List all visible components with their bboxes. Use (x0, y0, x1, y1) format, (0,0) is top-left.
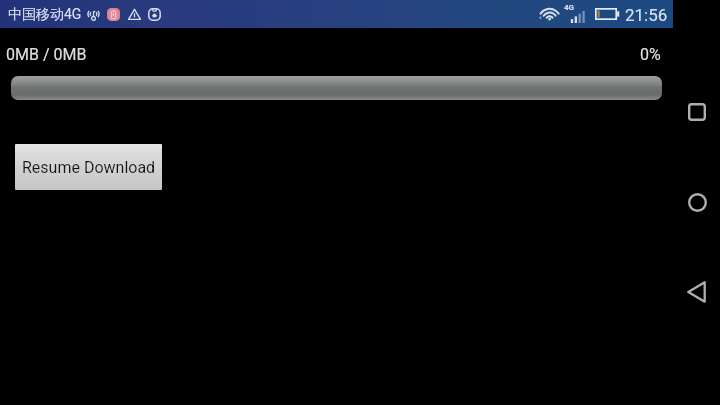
staticText: Resume Download (22, 158, 156, 177)
button[interactable]: Back (678, 274, 714, 310)
button[interactable]: Recents (679, 94, 715, 130)
staticText: 4G (564, 3, 575, 12)
staticText: 21:56 (625, 5, 668, 25)
button[interactable]: Resume Download (15, 144, 162, 190)
button[interactable]: Home (679, 184, 715, 220)
staticText: 0MB / 0MB (6, 45, 87, 64)
staticText: 0% (640, 45, 661, 64)
staticText: 中国移动4G (8, 6, 82, 24)
